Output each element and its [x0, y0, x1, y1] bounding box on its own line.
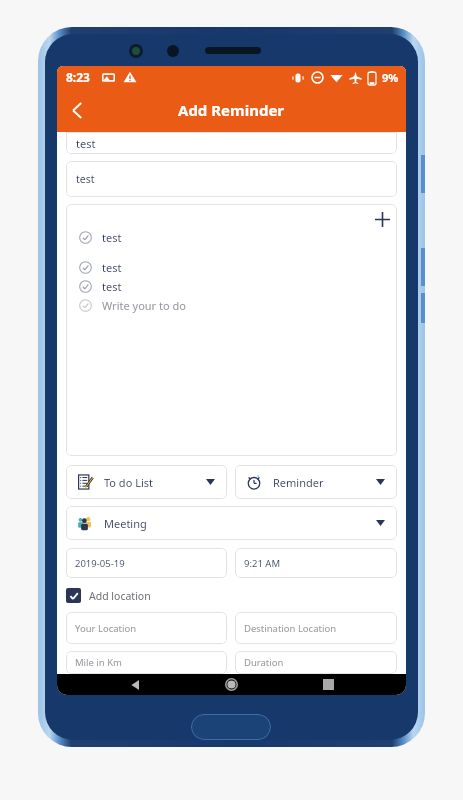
staticText: 2019-05-19: [75, 557, 125, 570]
staticText: Reminder: [273, 475, 324, 490]
staticText: Meeting: [104, 516, 147, 531]
button[interactable]: Back: [57, 90, 97, 130]
staticText: To do List: [104, 475, 153, 490]
button[interactable]: Write your to do: [79, 298, 397, 313]
button[interactable]: test: [66, 132, 397, 154]
button[interactable]: Duration: [235, 651, 397, 674]
button[interactable]: Meeting: [66, 506, 397, 540]
button[interactable]: test: [79, 260, 397, 275]
button[interactable]: Mile in Km: [66, 651, 227, 674]
staticText: 9%: [382, 70, 399, 85]
button[interactable]: Reminder: [235, 465, 397, 499]
staticText: Destination Location: [244, 622, 337, 635]
staticText: test: [76, 136, 96, 151]
staticText: Add location: [89, 589, 151, 603]
staticText: Mile in Km: [75, 656, 122, 669]
button[interactable]: To do List: [66, 465, 227, 499]
staticText: 8:23: [66, 69, 90, 85]
staticText: test: [102, 279, 122, 294]
button[interactable]: test: [79, 230, 397, 245]
staticText: Write your to do: [102, 298, 186, 313]
staticText: Your Location: [75, 622, 137, 635]
button[interactable]: Destination Location: [235, 612, 397, 644]
button[interactable]: Add location: [66, 586, 151, 605]
staticText: Duration: [244, 656, 284, 669]
staticText: test: [102, 260, 122, 275]
staticText: test: [76, 172, 95, 186]
staticText: Add Reminder: [178, 100, 285, 120]
staticText: test: [102, 230, 122, 245]
button[interactable]: Add to do item: [367, 204, 397, 234]
button[interactable]: test: [79, 279, 397, 294]
button[interactable]: Your Location: [66, 612, 227, 644]
button[interactable]: test: [66, 161, 397, 197]
button[interactable]: 9:21 AM: [235, 548, 397, 578]
staticText: 9:21 AM: [244, 557, 281, 570]
button[interactable]: 2019-05-19: [66, 548, 227, 578]
